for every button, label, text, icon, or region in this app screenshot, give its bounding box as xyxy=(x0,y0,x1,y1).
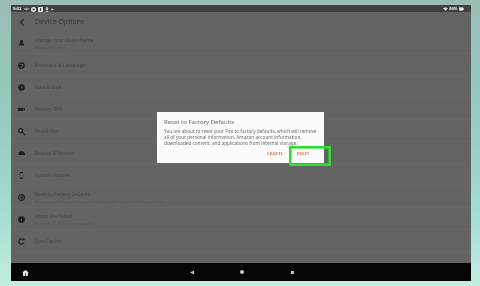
staticText: Keyboard & Language xyxy=(35,62,85,68)
staticText: Date & time xyxy=(35,84,62,90)
button[interactable]: Keyboard & Language xyxy=(11,54,471,76)
button[interactable]: Home screen xyxy=(19,266,32,279)
button[interactable]: System Updates xyxy=(11,164,471,186)
staticText: Search Bar xyxy=(35,128,59,134)
button[interactable]: Recent apps xyxy=(285,265,299,279)
staticText: 36% xyxy=(449,6,458,12)
button[interactable]: Backup & Restore xyxy=(11,142,471,164)
staticText: RESET xyxy=(297,150,310,156)
button[interactable]: Home xyxy=(235,265,249,279)
staticText: About Fire Tablet xyxy=(35,213,73,219)
staticText: Backup & Restore xyxy=(35,150,74,156)
button[interactable]: Change Your Device Name xyxy=(11,32,471,54)
staticText: Reset to Factory Defaults xyxy=(35,191,90,197)
staticText: downloaded content, and applications fro… xyxy=(164,140,298,146)
button[interactable]: Back xyxy=(185,265,199,279)
staticText: System Updates xyxy=(35,172,71,178)
button[interactable]: Back xyxy=(14,14,30,30)
staticText: Change Your Device Name xyxy=(35,37,94,43)
button[interactable]: CANCEL xyxy=(264,148,287,158)
staticText: Fire Max 11 (13th Generation) xyxy=(35,221,92,227)
button[interactable]: RESET xyxy=(293,148,314,158)
staticText: Reset to Factory Defaults xyxy=(164,118,235,126)
staticText: 9:32 xyxy=(13,6,22,12)
staticText: Removes all personal data and downloaded… xyxy=(35,199,163,205)
button[interactable]: About Fire Tablet xyxy=(11,208,471,230)
button[interactable]: Search Bar xyxy=(11,120,471,142)
staticText: Battery: 36% xyxy=(35,106,63,112)
button[interactable]: Battery: 36% xyxy=(11,98,471,120)
staticText: Sync Device xyxy=(35,238,61,244)
button[interactable]: Reset to Factory Defaults xyxy=(11,186,471,208)
staticText: You are about to reset your Fire to fact… xyxy=(164,128,317,134)
staticText: CANCEL xyxy=(267,150,284,156)
staticText: all of your personal information, Amazon… xyxy=(164,134,302,140)
staticText: Alexander's Fire xyxy=(35,45,66,51)
staticText: Device Options xyxy=(35,17,85,27)
button[interactable]: Date & time xyxy=(11,76,471,98)
